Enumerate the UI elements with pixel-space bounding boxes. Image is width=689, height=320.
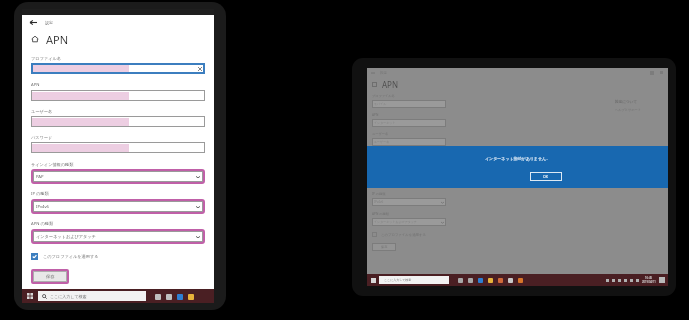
staticText: インターネット接続がありません。 <box>485 156 551 161</box>
staticText: APN <box>372 113 379 117</box>
staticText: プロファイル名 <box>31 56 61 61</box>
staticText: 保存 <box>46 274 55 279</box>
button[interactable] <box>31 142 205 153</box>
staticText: IPv4v6 <box>36 204 49 210</box>
button[interactable]: インターネットおよびアタッチ <box>33 231 203 242</box>
button[interactable]: ここに入力して検索 <box>379 276 449 284</box>
button[interactable]: Taskbar app <box>455 275 465 285</box>
button[interactable]: Taskbar app <box>475 275 485 285</box>
staticText: プロファイル名 <box>372 94 395 98</box>
staticText: ユーザー名 <box>31 109 53 114</box>
staticText: パスワード <box>31 135 53 140</box>
other: Home <box>31 35 39 43</box>
button[interactable] <box>31 116 205 127</box>
button[interactable]: Taskbar app <box>163 291 174 302</box>
staticText: PAP <box>36 174 44 180</box>
button[interactable]: インターネット <box>372 119 446 127</box>
staticText: ここに入力して検索 <box>50 294 87 299</box>
staticText: インターネットおよびアタッチ <box>36 234 96 239</box>
button[interactable]: OK <box>530 172 562 181</box>
staticText: モバイル <box>374 102 387 106</box>
other: Back <box>30 19 37 26</box>
button[interactable]: Taskbar app <box>505 275 515 285</box>
button[interactable]: Taskbar app <box>174 291 185 302</box>
button[interactable]: Taskbar app <box>152 291 163 302</box>
staticText: サインイン情報の種類 <box>31 162 74 167</box>
button[interactable]: Start <box>367 274 379 286</box>
button[interactable]: 保存 <box>33 271 67 282</box>
staticText: APN <box>46 32 69 47</box>
staticText: 保存 <box>381 245 388 249</box>
button[interactable]: IPv4v6 <box>372 198 446 206</box>
button[interactable]: Taskbar app <box>185 291 196 302</box>
staticText: 設定 <box>45 20 53 25</box>
button[interactable]: PAP <box>33 171 203 182</box>
button[interactable]: Taskbar app <box>485 275 495 285</box>
staticText: OK <box>543 174 549 179</box>
button[interactable]: このプロファイルを適用する <box>372 232 426 237</box>
button[interactable]: Taskbar app <box>465 275 475 285</box>
staticText: ヘルプとサポート <box>615 108 642 112</box>
staticText: APN <box>31 82 40 88</box>
staticText: IP の種類 <box>31 191 49 197</box>
staticText: このプロファイルを適用する <box>43 254 99 259</box>
other: Back <box>371 71 375 75</box>
button[interactable]: このプロファイルを適用する <box>31 253 205 260</box>
button[interactable]: Taskbar app <box>515 275 525 285</box>
staticText: このプロファイルを適用する <box>381 233 426 237</box>
staticText: 設定 <box>380 71 387 75</box>
staticText: インターネット <box>374 121 396 125</box>
button[interactable] <box>31 63 205 74</box>
button[interactable]: モバイル <box>372 100 446 108</box>
button[interactable]: ここに入力して検索 <box>38 291 146 301</box>
staticText: ユーザー名 <box>372 132 389 136</box>
staticText: APN <box>382 79 399 90</box>
button[interactable]: 保存 <box>372 243 396 251</box>
button[interactable]: Taskbar app <box>495 275 505 285</box>
button[interactable]: Start <box>22 289 38 303</box>
staticText: APN の種類 <box>31 221 54 227</box>
button[interactable]: ユーザー名 <box>372 138 446 146</box>
staticText: 16:45 <box>645 276 653 280</box>
staticText: ユーザー名 <box>374 140 390 144</box>
button[interactable]: インターネットおよびアタッチ <box>372 218 446 226</box>
staticText: インターネットおよびアタッチ <box>374 220 417 224</box>
staticText: 2019/04/11 <box>642 280 656 284</box>
staticText: 設定について <box>615 100 637 105</box>
staticText: APN の種類 <box>372 212 389 216</box>
button[interactable]: IPv4v6 <box>33 201 203 212</box>
staticText: ここに入力して検索 <box>384 278 412 282</box>
button[interactable] <box>31 90 205 101</box>
staticText: IPv4v6 <box>374 200 384 204</box>
button[interactable]: Back <box>22 15 214 29</box>
staticText: IP の種類 <box>372 192 386 196</box>
